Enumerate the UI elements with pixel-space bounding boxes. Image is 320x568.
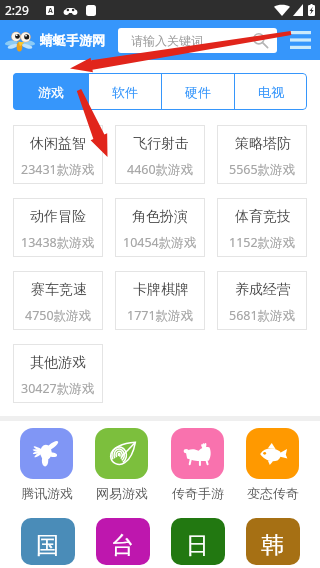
- button[interactable]: 韩: [246, 518, 300, 565]
- staticText: 变态传奇: [247, 485, 299, 501]
- staticText: 1152款游戏: [229, 234, 296, 251]
- button[interactable]: 请输入关键词: [118, 28, 277, 53]
- staticText: 卡牌棋牌: [133, 281, 189, 299]
- button[interactable]: 赛车竞速: [13, 271, 103, 330]
- button[interactable]: 飞行射击: [115, 125, 205, 184]
- staticText: 策略塔防: [235, 135, 291, 153]
- button[interactable]: 休闲益智: [13, 125, 103, 184]
- button[interactable]: 硬件: [162, 73, 234, 110]
- button[interactable]: 传奇手游: [171, 428, 224, 501]
- staticText: 13438款游戏: [21, 234, 95, 251]
- staticText: 动作冒险: [30, 208, 86, 226]
- button[interactable]: 日: [171, 518, 225, 565]
- button[interactable]: 体育竞技: [217, 198, 307, 257]
- button[interactable]: 腾讯游戏: [20, 428, 73, 501]
- button[interactable]: Menu: [290, 27, 311, 53]
- staticText: 蜻蜓手游网: [40, 32, 105, 48]
- button[interactable]: 软件: [89, 73, 161, 110]
- button[interactable]: 动作冒险: [13, 198, 103, 257]
- staticText: 韩: [261, 531, 284, 560]
- staticText: 软件: [112, 84, 138, 100]
- staticText: 网易游戏: [96, 485, 148, 501]
- staticText: 30427款游戏: [21, 380, 95, 397]
- button[interactable]: 台: [96, 518, 150, 565]
- button[interactable]: 电视: [235, 73, 307, 110]
- button[interactable]: 角色扮演: [115, 198, 205, 257]
- staticText: 电视: [258, 84, 284, 100]
- staticText: 5565款游戏: [229, 161, 296, 178]
- staticText: 体育竞技: [235, 208, 291, 226]
- button[interactable]: 变态传奇: [246, 428, 299, 501]
- button[interactable]: 养成经营: [217, 271, 307, 330]
- staticText: 2:29: [5, 2, 29, 18]
- button[interactable]: 其他游戏: [13, 344, 103, 403]
- staticText: 4750款游戏: [25, 307, 92, 324]
- staticText: 硬件: [185, 84, 211, 100]
- button[interactable]: 卡牌棋牌: [115, 271, 205, 330]
- staticText: 国: [36, 531, 59, 560]
- staticText: 5681款游戏: [229, 307, 296, 324]
- staticText: 23431款游戏: [21, 161, 95, 178]
- staticText: 10454款游戏: [123, 234, 197, 251]
- staticText: 请输入关键词: [131, 33, 203, 48]
- staticText: A: [48, 6, 53, 15]
- staticText: 赛车竞速: [31, 281, 87, 299]
- button[interactable]: 游戏: [13, 73, 88, 110]
- staticText: 腾讯游戏: [21, 485, 73, 501]
- staticText: 游戏: [38, 84, 64, 100]
- staticText: 休闲益智: [30, 135, 86, 153]
- staticText: 台: [111, 531, 134, 560]
- button[interactable]: 策略塔防: [217, 125, 307, 184]
- button[interactable]: 国: [21, 518, 75, 565]
- staticText: 角色扮演: [132, 208, 188, 226]
- staticText: 其他游戏: [30, 354, 86, 372]
- staticText: 日: [186, 531, 209, 560]
- button[interactable]: 网易游戏: [95, 428, 148, 501]
- staticText: 传奇手游: [172, 485, 224, 501]
- staticText: 4460款游戏: [127, 161, 194, 178]
- staticText: 1771款游戏: [127, 307, 194, 324]
- staticText: 养成经营: [235, 281, 291, 299]
- staticText: 飞行射击: [133, 135, 189, 153]
